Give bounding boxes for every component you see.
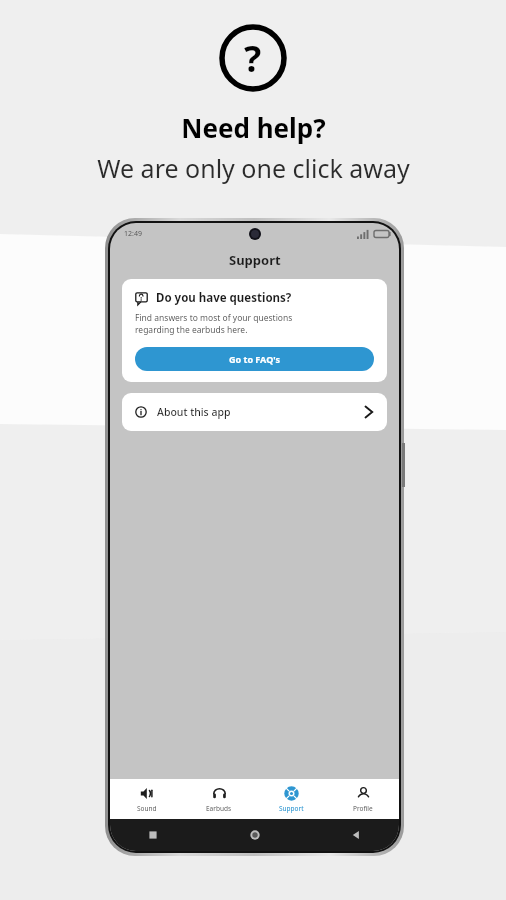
staticText: About this app <box>157 405 231 419</box>
button[interactable]: About this app <box>122 393 387 431</box>
button[interactable]: Sound <box>110 779 183 819</box>
staticText: We are only one click away <box>97 151 410 185</box>
button[interactable]: Recent apps <box>144 826 162 844</box>
staticText: 12:49 <box>124 229 142 239</box>
staticText: Sound <box>137 804 157 813</box>
staticText: Go to FAQ's <box>229 353 280 365</box>
staticText: Support <box>279 804 304 813</box>
staticText: Profile <box>353 804 373 813</box>
button[interactable]: Go to FAQ's <box>135 347 374 371</box>
staticText: Earbuds <box>206 804 232 813</box>
staticText: ? <box>244 34 262 83</box>
button[interactable]: Back <box>347 826 365 844</box>
staticText: Need help? <box>181 110 326 145</box>
staticText: Find answers to most of your questions r… <box>135 312 293 336</box>
staticText: Do you have questions? <box>156 290 292 306</box>
button[interactable]: Home <box>246 826 264 844</box>
staticText: Support <box>229 251 281 269</box>
button[interactable]: Support <box>255 779 327 819</box>
button[interactable]: Earbuds <box>183 779 255 819</box>
button[interactable]: Profile <box>327 779 399 819</box>
